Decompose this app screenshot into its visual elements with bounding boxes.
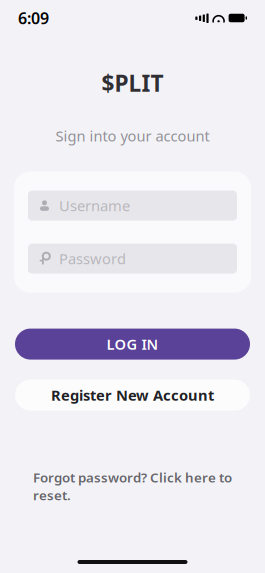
button[interactable]: Password	[28, 244, 237, 274]
button[interactable]: LOG IN	[15, 329, 250, 360]
button[interactable]: Username	[28, 191, 237, 221]
button[interactable]: Register New Account	[15, 380, 250, 411]
button[interactable]: Forgot password? Click here to reset.	[17, 463, 248, 510]
staticText: Sign into your account	[55, 126, 209, 146]
staticText: 6:09	[18, 7, 49, 29]
staticText: $PLIT	[101, 68, 163, 98]
staticText: Register New Account	[51, 385, 214, 405]
staticText: Forgot password? Click here to reset.	[33, 469, 232, 504]
staticText: Username	[59, 196, 130, 215]
staticText: LOG IN	[106, 334, 158, 354]
staticText: Password	[59, 249, 126, 268]
